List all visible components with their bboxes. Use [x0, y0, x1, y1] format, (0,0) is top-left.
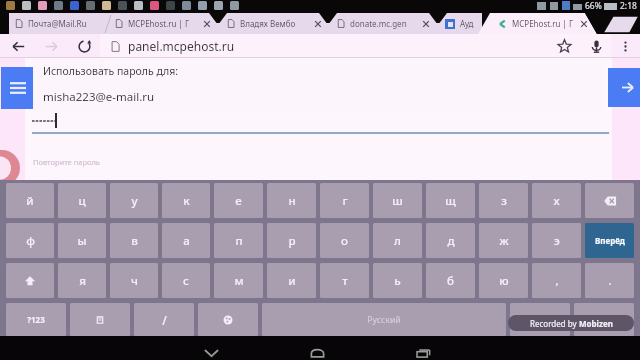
button[interactable]: к — [162, 183, 210, 218]
staticText: ц — [78, 193, 86, 209]
staticText: ы — [77, 233, 87, 249]
staticText: . — [603, 313, 606, 327]
staticText: с — [183, 273, 189, 289]
button[interactable]: donate.mc.gen — [332, 13, 434, 34]
button[interactable]: г — [320, 183, 369, 218]
staticText: л — [394, 233, 401, 249]
staticText: ф — [26, 233, 35, 249]
button[interactable]: й — [6, 183, 54, 218]
button[interactable]: New tab — [602, 13, 640, 34]
button[interactable]: Вперёд — [585, 223, 634, 258]
button[interactable]: л — [373, 223, 422, 258]
button[interactable]: Bookmark — [555, 37, 573, 55]
button[interactable]: р — [267, 223, 316, 258]
button[interactable]: а — [162, 223, 210, 258]
button[interactable]: Reload — [75, 37, 93, 55]
button[interactable]: Использовать пароль для: — [33, 59, 604, 111]
staticText: щ — [445, 193, 456, 209]
staticText: ч — [131, 273, 138, 289]
staticText: р — [288, 233, 296, 249]
button[interactable]: Back — [188, 341, 234, 360]
staticText: Повторите пароль — [33, 157, 100, 167]
button[interactable]: п — [214, 223, 263, 258]
button[interactable]: Recents — [400, 341, 446, 360]
button[interactable]: MCPEhost.ru | Г — [492, 13, 592, 34]
staticText: panel.mcpehost.ru — [128, 38, 235, 54]
button[interactable]: More options — [616, 37, 634, 55]
button[interactable]: е — [214, 183, 263, 218]
staticText: Вперёд — [595, 235, 625, 246]
button[interactable]: э — [532, 223, 581, 258]
button[interactable]: т — [320, 263, 369, 298]
staticText: MCPEhost.ru | Г — [512, 18, 574, 29]
staticText: 66% — [585, 0, 602, 10]
staticText: ж — [499, 233, 509, 249]
staticText: и — [288, 273, 296, 289]
button[interactable]: б — [426, 263, 475, 298]
button[interactable]: Shift — [6, 263, 54, 298]
staticText: у — [131, 193, 138, 209]
staticText: п — [235, 233, 243, 249]
button[interactable]: щ — [426, 183, 475, 218]
staticText: о — [341, 233, 348, 249]
staticText: . — [608, 273, 612, 289]
staticText: а — [183, 233, 190, 249]
staticText: й — [26, 193, 34, 209]
button[interactable]: Русский — [262, 303, 506, 336]
staticText: Mobizen — [579, 318, 613, 329]
button[interactable]: Back — [9, 37, 27, 55]
button[interactable]: ш — [373, 183, 422, 218]
staticText: ю — [499, 273, 509, 289]
button[interactable]: Emoji — [70, 303, 130, 336]
button[interactable]: Владях Вембо — [222, 13, 326, 34]
button[interactable]: ?123 — [6, 303, 66, 336]
button[interactable]: ' — [510, 303, 570, 336]
staticText: 2:18 — [620, 0, 637, 10]
button[interactable]: Submit — [608, 68, 640, 107]
button[interactable]: н — [267, 183, 316, 218]
button[interactable]: panel.mcpehost.ru — [99, 34, 555, 58]
button[interactable]: в — [110, 223, 158, 258]
staticText: е — [235, 193, 242, 209]
button[interactable]: у — [110, 183, 158, 218]
staticText: ?123 — [27, 314, 45, 325]
button[interactable]: Почта@Mail.Ru — [10, 13, 106, 34]
button[interactable]: Home — [294, 341, 340, 360]
button[interactable]: я — [58, 263, 106, 298]
button[interactable]: с — [162, 263, 210, 298]
staticText: в — [131, 233, 138, 249]
staticText: н — [288, 193, 296, 209]
button[interactable]: Forward — [42, 37, 60, 55]
button[interactable]: Backspace — [585, 183, 634, 218]
button[interactable]: , — [532, 263, 581, 298]
button[interactable]: ю — [479, 263, 528, 298]
button[interactable]: ж — [479, 223, 528, 258]
button[interactable]: з — [479, 183, 528, 218]
staticText: г — [342, 193, 348, 209]
button[interactable]: Menu — [1, 67, 34, 109]
staticText: Ауди — [460, 18, 476, 29]
staticText: м — [234, 273, 244, 289]
staticText: Использовать пароль для: — [43, 64, 179, 78]
button[interactable]: ф — [6, 223, 54, 258]
button[interactable]: . — [574, 303, 634, 336]
button[interactable]: ч — [110, 263, 158, 298]
button[interactable]: и — [267, 263, 316, 298]
staticText: т — [342, 273, 348, 289]
button[interactable]: MCPEhost.ru | Г — [110, 13, 215, 34]
button[interactable]: Voice search — [587, 37, 605, 55]
button[interactable]: / — [134, 303, 194, 336]
button[interactable]: ы — [58, 223, 106, 258]
button[interactable]: м — [214, 263, 263, 298]
button[interactable]: о — [320, 223, 369, 258]
staticText: х — [553, 193, 560, 209]
button[interactable]: х — [532, 183, 581, 218]
staticText: / — [162, 312, 167, 328]
button[interactable]: Ауди — [440, 13, 480, 34]
button[interactable]: ц — [58, 183, 106, 218]
button[interactable]: д — [426, 223, 475, 258]
button[interactable]: Change language — [198, 303, 258, 336]
button[interactable]: ь — [373, 263, 422, 298]
staticText: Recorded by — [530, 318, 579, 329]
